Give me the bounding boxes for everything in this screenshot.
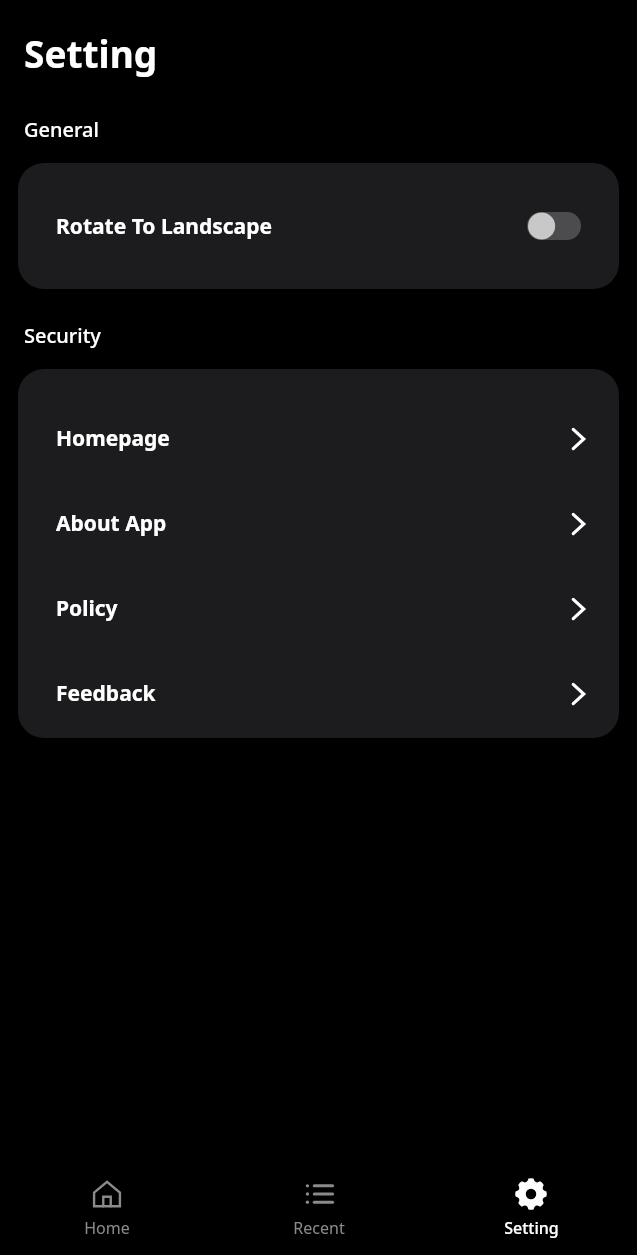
staticText: Setting	[504, 1217, 559, 1239]
button[interactable]: Home	[0, 1160, 213, 1255]
staticText: Feedback	[56, 679, 571, 708]
staticText: Rotate To Landscape	[56, 212, 527, 241]
button[interactable]: Homepage	[18, 396, 619, 481]
staticText: Security	[24, 322, 101, 349]
staticText: Policy	[56, 594, 571, 623]
button[interactable]: Recent	[213, 1160, 425, 1255]
staticText: Setting	[24, 28, 158, 78]
button[interactable]: Policy	[18, 566, 619, 651]
button[interactable]: About App	[18, 481, 619, 566]
staticText: About App	[56, 509, 571, 538]
button[interactable]: Feedback	[18, 651, 619, 736]
staticText: General	[24, 116, 99, 143]
staticText: Recent	[293, 1217, 345, 1239]
button[interactable]: Setting	[425, 1160, 637, 1255]
button[interactable]: Rotate To Landscape	[18, 163, 619, 289]
staticText: Home	[84, 1217, 130, 1239]
button[interactable]: Rotate To Landscape toggle	[527, 212, 581, 240]
staticText: Homepage	[56, 424, 571, 453]
